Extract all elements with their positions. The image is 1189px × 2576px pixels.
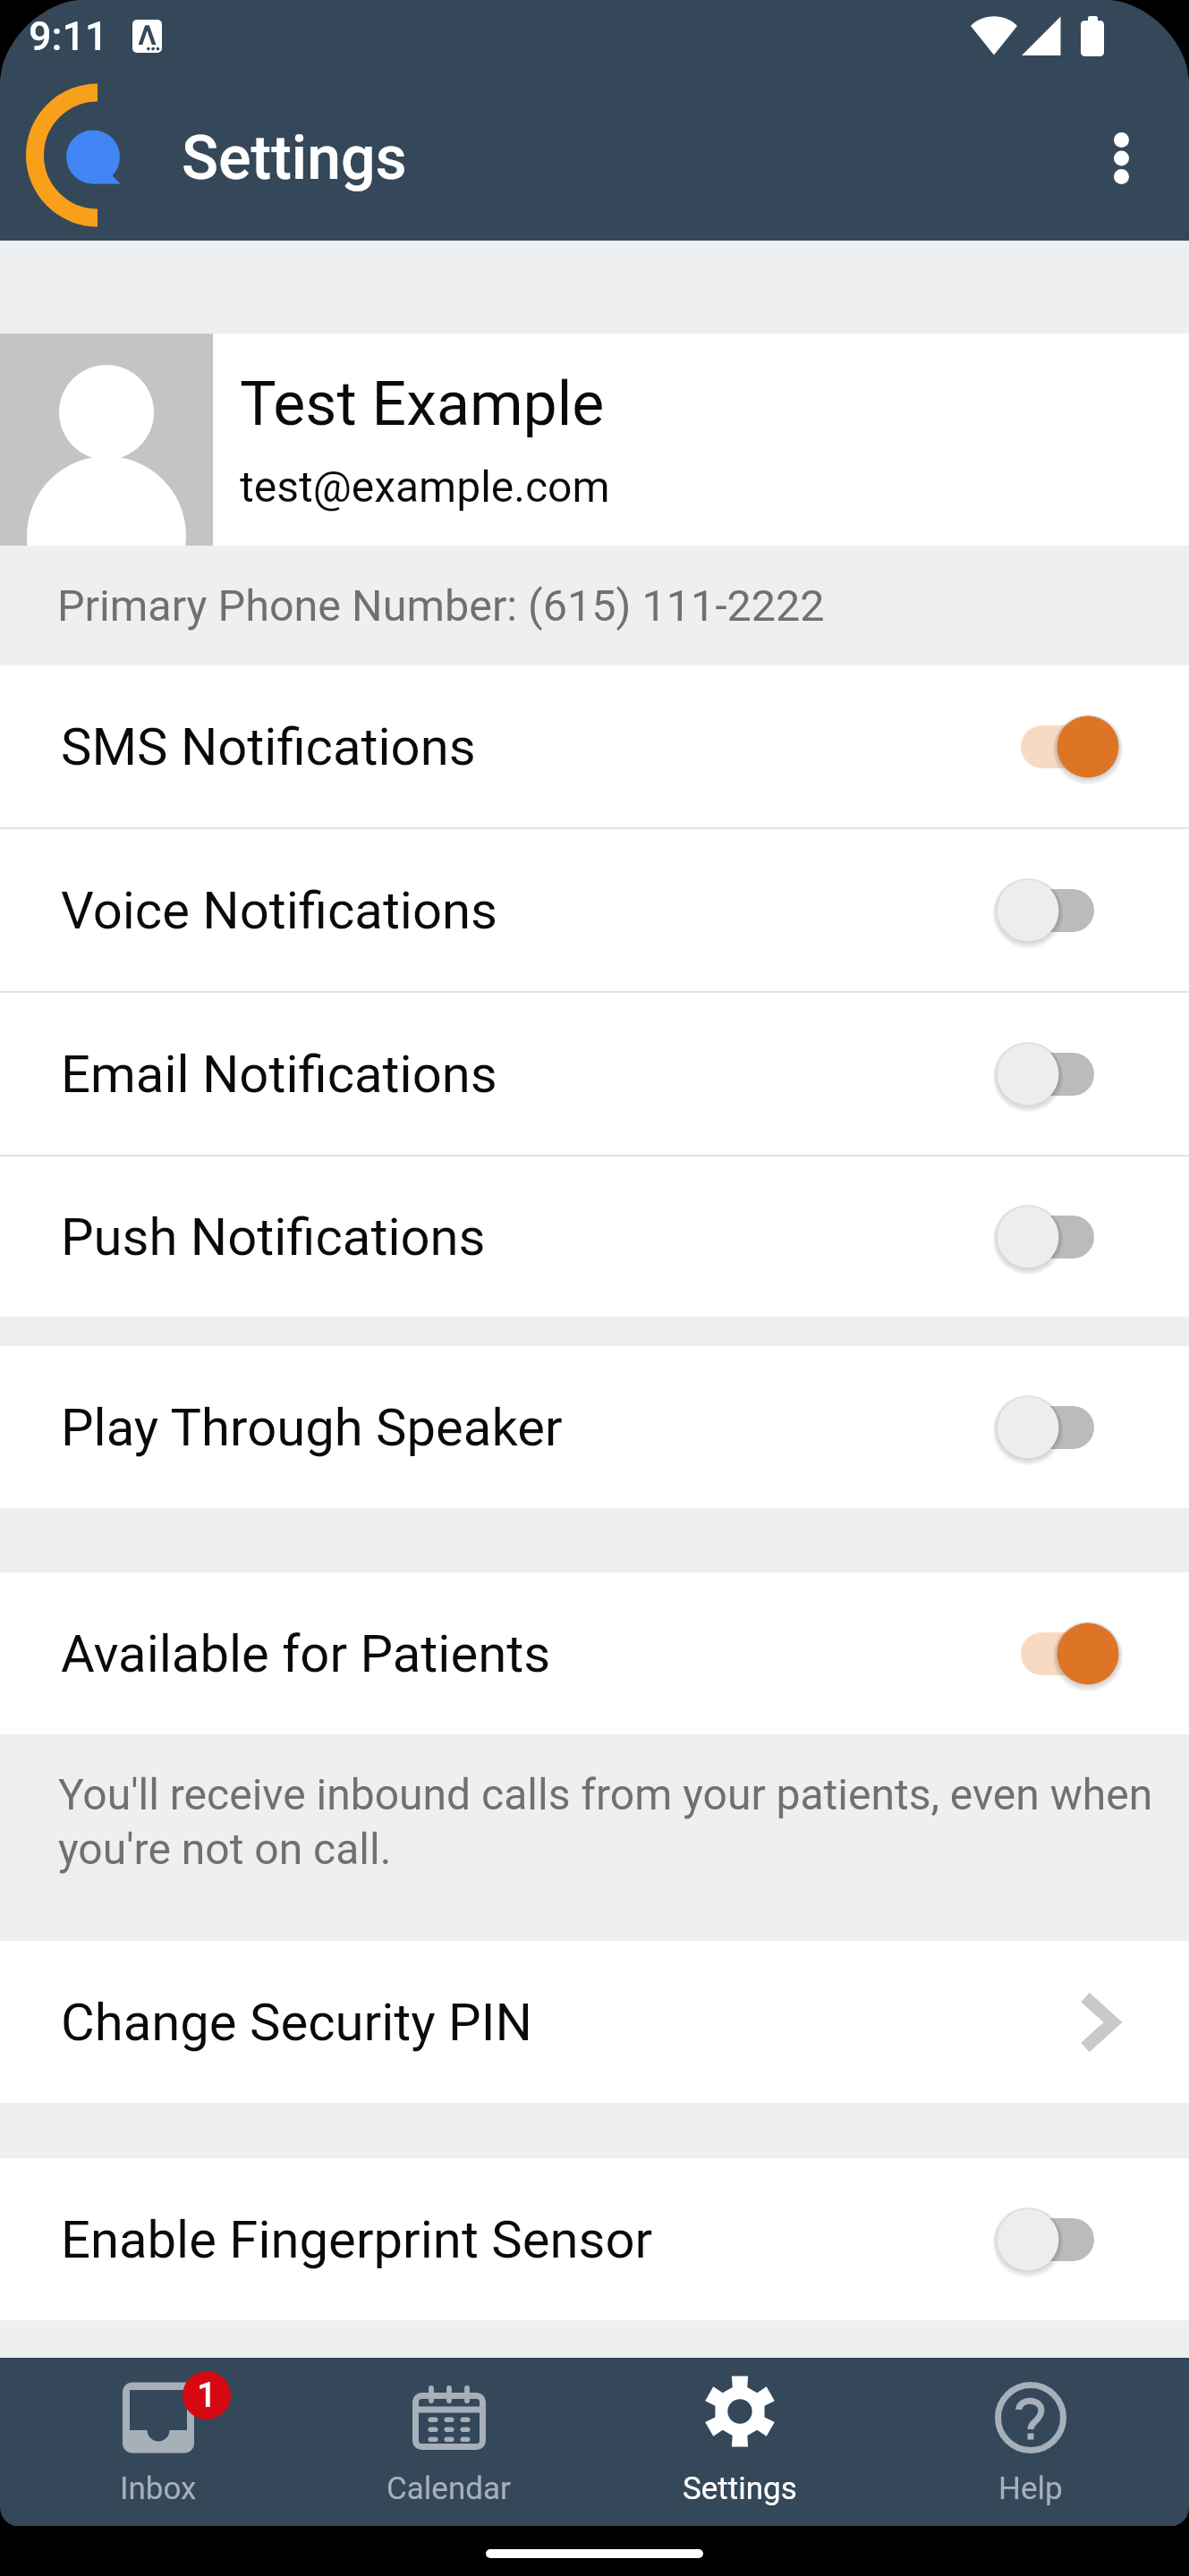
staticText: test@example.com (240, 462, 610, 512)
staticText: You'll receive inbound calls from your p… (58, 1769, 1182, 1875)
staticText: Push Notifications (61, 1207, 486, 1267)
button[interactable]: Change Security PIN (0, 1941, 1189, 2103)
button[interactable]: Push Notifications (0, 1157, 1189, 1317)
staticText: Enable Fingerprint Sensor (61, 2209, 653, 2270)
button[interactable]: SMS Notifications (0, 665, 1189, 827)
staticText: Help (998, 2470, 1063, 2507)
button[interactable]: Play Through Speaker (0, 1346, 1189, 1508)
button[interactable]: Settings (594, 2358, 885, 2526)
staticText: 9:11 (29, 13, 108, 60)
staticText: Play Through Speaker (61, 1397, 563, 1458)
staticText: Email Notifications (61, 1044, 497, 1105)
staticText: Settings (182, 123, 407, 194)
button[interactable]: More options (1067, 105, 1175, 212)
staticText: Primary Phone Number: (615) 111-2222 (57, 580, 825, 631)
staticText: SMS Notifications (61, 716, 476, 777)
button[interactable]: Enable Fingerprint Sensor (0, 2158, 1189, 2320)
staticText: Voice Notifications (61, 880, 498, 941)
staticText: Available for Patients (61, 1623, 551, 1684)
button[interactable]: Calendar (303, 2358, 594, 2526)
button[interactable]: Voice Notifications (0, 829, 1189, 991)
staticText: Settings (683, 2470, 797, 2507)
button[interactable]: Email Notifications (0, 993, 1189, 1155)
button[interactable]: Available for Patients (0, 1572, 1189, 1734)
staticText: Inbox (120, 2470, 197, 2507)
staticText: 1 (197, 2376, 217, 2416)
button[interactable]: Help (885, 2358, 1176, 2526)
staticText: Calendar (386, 2470, 511, 2507)
staticText: Change Security PIN (61, 1992, 532, 2053)
staticText: Test Example (240, 369, 605, 440)
button[interactable]: Test Example (0, 334, 1189, 546)
button[interactable]: 1 (13, 2358, 303, 2526)
